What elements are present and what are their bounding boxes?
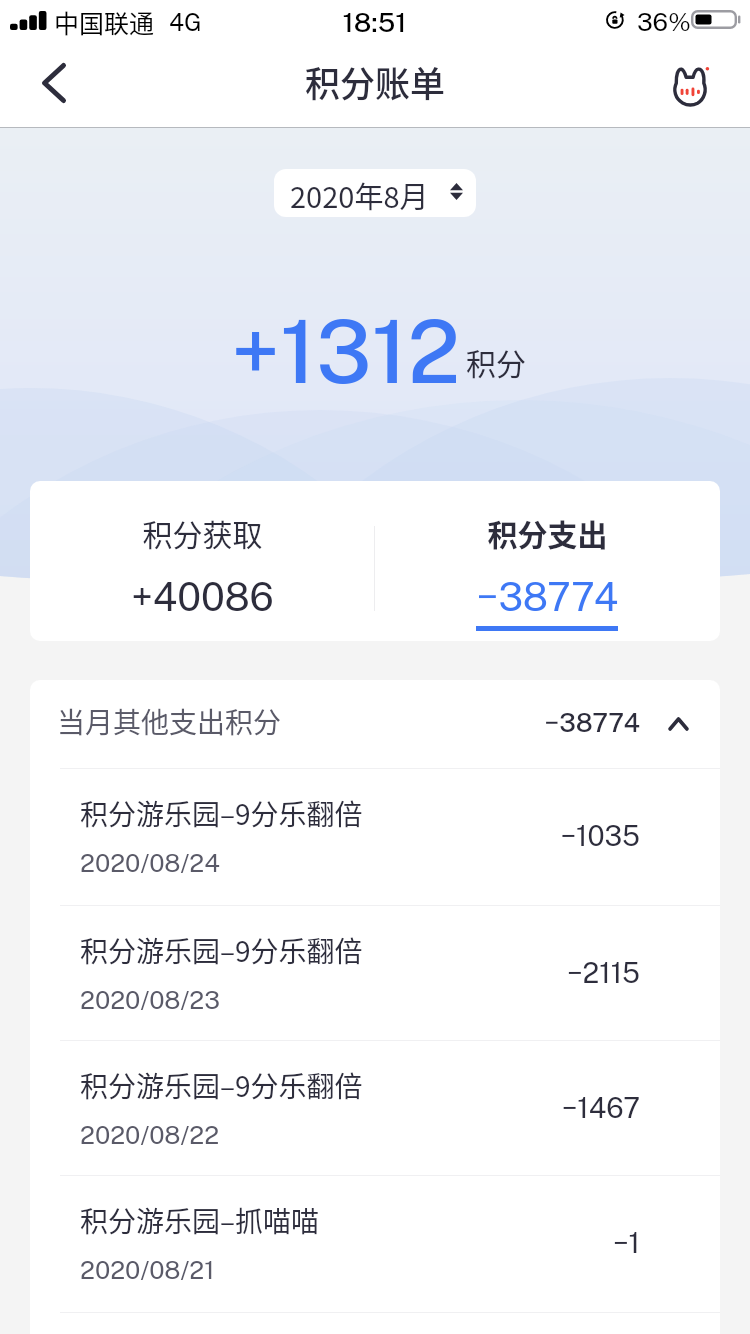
staticText: 2020年8月 bbox=[290, 174, 429, 216]
staticText: 积分游乐园–9分乐翻倍 bbox=[80, 930, 363, 971]
staticText: 中国联通 bbox=[54, 4, 155, 40]
staticText: −1 bbox=[430, 1226, 640, 1259]
staticText: −38774 bbox=[430, 707, 640, 738]
staticText: 积分游乐园–抓喵喵 bbox=[80, 1200, 320, 1241]
staticText: 2020/08/24 bbox=[80, 848, 220, 877]
staticText: −1467 bbox=[430, 1091, 640, 1124]
button[interactable]: Customer service bbox=[664, 57, 720, 113]
staticText: −38774 bbox=[375, 574, 720, 620]
button[interactable]: 积分支出 bbox=[375, 481, 720, 641]
button[interactable]: 积分游乐园–抓喵喵 bbox=[30, 1176, 720, 1312]
staticText: 18:51 bbox=[287, 6, 462, 38]
staticText: 积分获取 bbox=[30, 511, 375, 554]
button[interactable]: 积分游乐园–9分乐翻倍 bbox=[30, 769, 720, 905]
staticText: 积分 bbox=[466, 340, 526, 383]
staticText: 36% bbox=[637, 7, 691, 36]
staticText: +1312 bbox=[231, 300, 461, 402]
staticText: 4G bbox=[169, 8, 202, 36]
staticText: −1035 bbox=[430, 819, 640, 852]
button[interactable]: 积分获取 bbox=[30, 481, 375, 641]
staticText: 2020/08/21 bbox=[80, 1255, 215, 1284]
button[interactable]: 积分游乐园–9分乐翻倍 bbox=[30, 1041, 720, 1175]
button[interactable]: 积分游乐园–9分乐翻倍 bbox=[30, 906, 720, 1040]
staticText: −2115 bbox=[430, 956, 640, 989]
staticText: 积分支出 bbox=[375, 511, 720, 554]
staticText: +40086 bbox=[30, 574, 375, 620]
staticText: 2020/08/23 bbox=[80, 985, 220, 1014]
staticText: 积分账单 bbox=[305, 56, 446, 107]
button[interactable]: 2020年8月 bbox=[274, 169, 476, 217]
staticText: 积分游乐园–9分乐翻倍 bbox=[80, 1065, 363, 1106]
staticText: 2020/08/22 bbox=[80, 1120, 220, 1149]
button[interactable]: 当月其他支出积分 bbox=[30, 680, 720, 768]
staticText: 当月其他支出积分 bbox=[57, 701, 282, 742]
staticText: 积分游乐园–9分乐翻倍 bbox=[80, 793, 363, 834]
button[interactable]: Back bbox=[24, 53, 84, 113]
